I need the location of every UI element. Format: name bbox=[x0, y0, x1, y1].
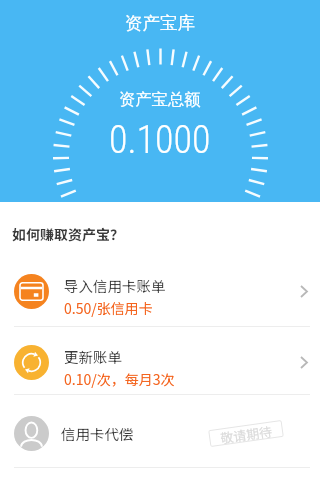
staticText: 更新账单 bbox=[64, 346, 122, 367]
staticText: 敬请期待 bbox=[219, 421, 274, 445]
button[interactable]: 导入信用卡账单 bbox=[0, 256, 320, 327]
staticText: 0.10/次，每月3次 bbox=[64, 369, 175, 389]
button[interactable]: 信用卡代偿 bbox=[0, 398, 320, 469]
staticText: 资产宝库 bbox=[125, 12, 195, 34]
staticText: 0.1000 bbox=[109, 118, 211, 163]
staticText: 0.50/张信用卡 bbox=[64, 298, 153, 318]
staticText: 如何赚取资产宝？ bbox=[12, 224, 124, 244]
staticText: 导入信用卡账单 bbox=[64, 275, 166, 296]
staticText: 信用卡代偿 bbox=[61, 423, 134, 444]
button[interactable]: 更新账单 bbox=[0, 327, 320, 398]
staticText: 资产宝总额 bbox=[119, 89, 201, 110]
